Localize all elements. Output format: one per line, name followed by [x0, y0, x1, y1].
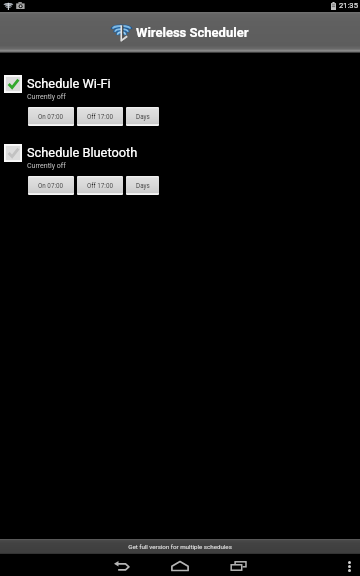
staticText: On 07:00 — [38, 182, 64, 189]
button[interactable]: Get full version for multiple schedules — [0, 538, 360, 554]
button[interactable] — [4, 75, 22, 93]
button[interactable]: Off 17:00 — [77, 176, 123, 195]
staticText: Days — [136, 113, 150, 120]
button[interactable]: Back — [93, 555, 151, 576]
button[interactable]: Days — [126, 107, 159, 126]
button[interactable]: On 07:00 — [28, 107, 74, 126]
button[interactable]: Schedule Bluetooth — [0, 144, 360, 198]
staticText: Off 17:00 — [87, 182, 113, 189]
staticText: 21:35 — [339, 1, 358, 10]
staticText: Days — [136, 182, 150, 189]
button[interactable]: Home — [151, 555, 209, 576]
staticText: Wireless Scheduler — [136, 25, 249, 40]
button[interactable]: On 07:00 — [28, 176, 74, 195]
staticText: On 07:00 — [38, 113, 64, 120]
button[interactable]: Schedule Wi-Fi — [0, 75, 360, 129]
staticText: Schedule Wi-Fi — [27, 76, 111, 91]
button[interactable]: More options — [338, 555, 360, 576]
button[interactable]: Days — [126, 176, 159, 195]
button[interactable] — [4, 144, 22, 162]
staticText: Currently off — [27, 162, 66, 170]
button[interactable]: Off 17:00 — [77, 107, 123, 126]
staticText: Schedule Bluetooth — [27, 145, 138, 160]
button[interactable]: Recent apps — [209, 555, 267, 576]
staticText: Currently off — [27, 93, 66, 101]
staticText: Off 17:00 — [87, 113, 113, 120]
staticText: Get full version for multiple schedules — [128, 543, 232, 550]
